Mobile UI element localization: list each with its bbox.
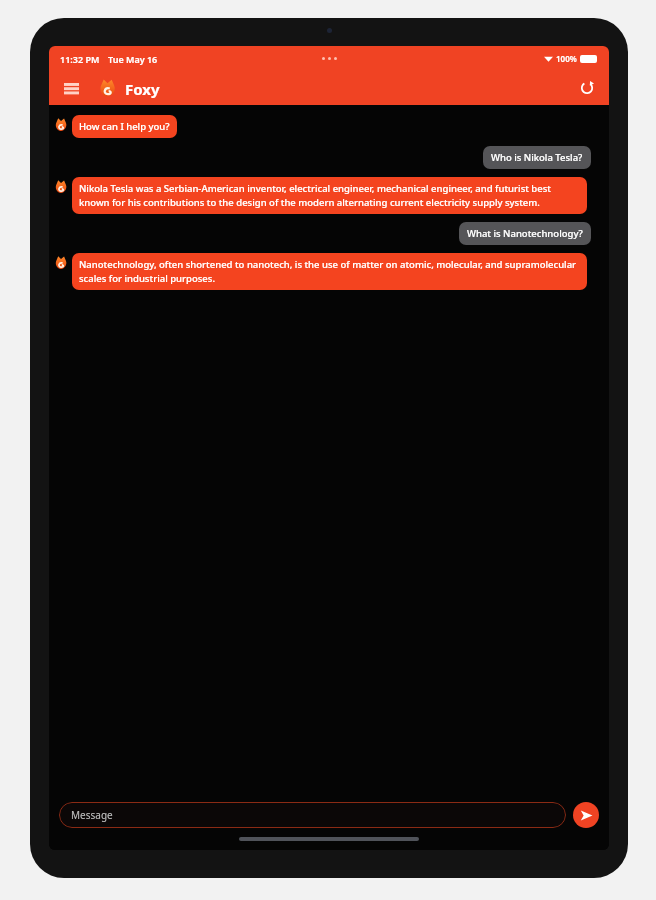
button[interactable]: Who is Nikola Tesla? <box>483 146 591 169</box>
staticText: What is Nanotechnology? <box>467 227 583 240</box>
staticText: Tue May 16 <box>108 53 158 65</box>
button[interactable]: What is Nanotechnology? <box>459 222 591 245</box>
staticText: 11:32 PM <box>60 53 100 65</box>
staticText: 100% <box>556 53 577 64</box>
staticText: Foxy <box>125 79 160 99</box>
button[interactable]: Nanotechnology, often shortened to nanot… <box>72 253 587 290</box>
staticText: Who is Nikola Tesla? <box>491 151 583 164</box>
staticText: Nanotechnology, often shortened to nanot… <box>79 258 580 285</box>
button[interactable]: Refresh <box>576 77 598 99</box>
staticText: How can I help you? <box>79 120 170 133</box>
staticText: Message <box>71 808 113 822</box>
button[interactable]: Nikola Tesla was a Serbian-American inve… <box>72 177 587 214</box>
button[interactable]: Menu <box>59 76 84 101</box>
staticText: Nikola Tesla was a Serbian-American inve… <box>79 182 580 209</box>
button[interactable]: How can I help you? <box>72 115 177 138</box>
button[interactable]: Message <box>59 802 566 828</box>
button[interactable]: Send <box>573 802 599 828</box>
